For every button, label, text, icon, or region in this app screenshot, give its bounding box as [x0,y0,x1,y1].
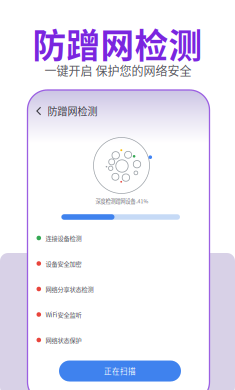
staticText: 正在扫描 [104,365,136,376]
button[interactable]: 网络分享状态检测 [36,282,186,296]
staticText: 设备安全加密 [46,259,82,268]
staticText: 防蹭网检测 [47,104,97,118]
button[interactable]: 防蹭网检测 [36,102,108,120]
staticText: 一键开启 保护您的网络安全 [44,62,191,79]
button[interactable]: WiFi安全监听 [36,307,186,321]
button[interactable]: 连接设备检测 [36,231,186,245]
staticText: 防蹭网检测 [32,19,202,68]
staticText: 网络分享状态检测 [46,284,94,293]
button[interactable]: 设备安全加密 [36,256,186,270]
staticText: WiFi安全监听 [46,310,82,319]
staticText: 深度检测蹭网设备..41% [95,197,148,205]
button[interactable]: 网络状态保护 [36,333,186,347]
staticText: 网络状态保护 [46,335,82,344]
staticText: 连接设备检测 [46,233,82,242]
button[interactable]: 正在扫描 [59,360,181,381]
